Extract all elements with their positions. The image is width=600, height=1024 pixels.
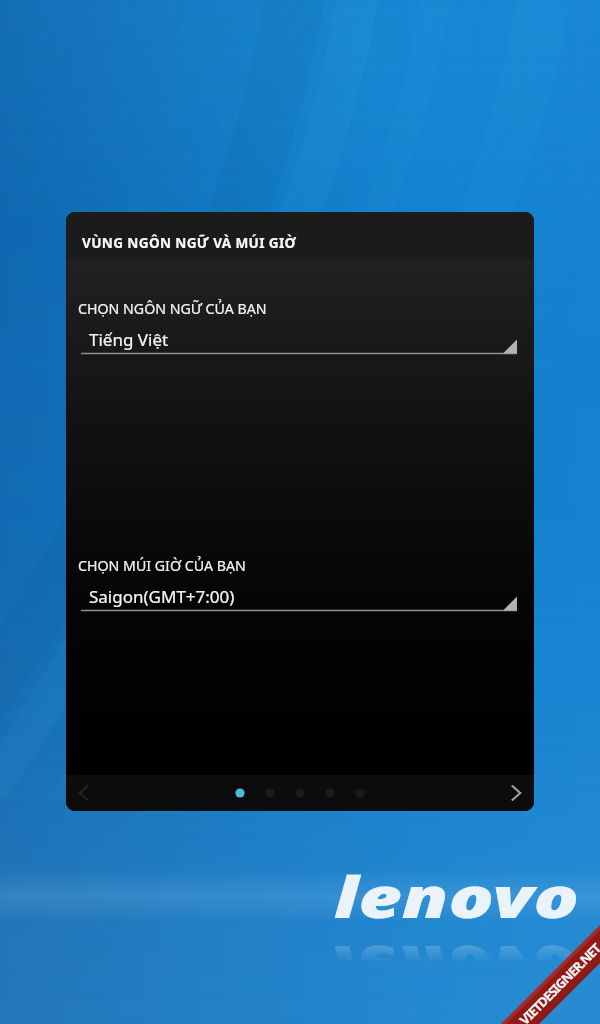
staticText: VIETDESIGNER.NET [515, 939, 600, 1024]
button[interactable]: Saigon(GMT+7:00) [81, 579, 517, 615]
staticText: Tiếng Việt [89, 328, 169, 351]
staticText: CHỌN MÚI GIỜ CỦA BẠN [78, 556, 246, 575]
button[interactable]: Tiếng Việt [81, 322, 517, 358]
button[interactable]: Previous [68, 777, 100, 809]
button[interactable]: Next [500, 777, 532, 809]
staticText: VÙNG NGÔN NGỮ VÀ MÚI GIỜ [82, 233, 297, 252]
staticText: CHỌN NGÔN NGỮ CỦA BẠN [78, 299, 267, 318]
staticText: Saigon(GMT+7:00) [89, 585, 235, 608]
